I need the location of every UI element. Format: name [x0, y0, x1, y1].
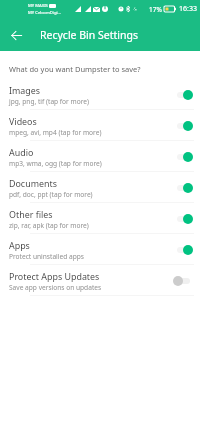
button[interactable]: Apps	[0, 234, 200, 265]
staticText: Images	[9, 84, 41, 96]
staticText: mp3, wma, ogg (tap for more)	[9, 159, 102, 168]
staticText: Audio	[9, 146, 34, 158]
button[interactable]: Protect Apps Updates	[0, 265, 200, 296]
staticText: Protect uninstalled apps	[9, 252, 84, 261]
button[interactable]: Back	[1, 20, 31, 50]
staticText: Videos	[9, 115, 37, 127]
button[interactable]: Audio	[0, 141, 200, 172]
button[interactable]: Videos	[0, 110, 200, 141]
staticText: zip, rar, apk (tap for more)	[9, 221, 89, 230]
staticText: mpeg, avi, mp4 (tap for more)	[9, 128, 102, 137]
staticText: pdf, doc, ppt (tap for more)	[9, 190, 93, 199]
staticText: Recycle Bin Settings	[40, 28, 138, 42]
staticText: Protect Apps Updates	[9, 270, 100, 282]
staticText: Documents	[9, 177, 57, 189]
staticText: What do you want Dumpster to save?	[9, 64, 141, 74]
staticText: Apps	[9, 239, 30, 251]
staticText: MY MAXIS	[28, 3, 48, 9]
staticText: jpg, png, tif (tap for more)	[9, 97, 89, 106]
staticText: 17%	[149, 5, 162, 14]
button[interactable]: Other files	[0, 203, 200, 234]
staticText: Save app versions on updates	[9, 283, 102, 292]
button[interactable]: Images	[0, 79, 200, 110]
button[interactable]: Documents	[0, 172, 200, 203]
staticText: Other files	[9, 208, 53, 220]
staticText: 16:33	[179, 4, 197, 14]
staticText: MY CelcomDigi...	[28, 10, 61, 16]
